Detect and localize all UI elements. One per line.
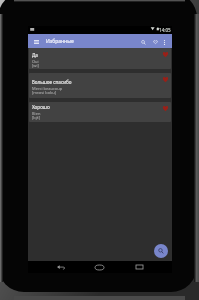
- button[interactable]: Recent apps: [127, 261, 151, 273]
- button[interactable]: Да: [29, 48, 171, 69]
- button[interactable]: Show favourites: [149, 36, 161, 48]
- button[interactable]: Remove from favourites: [160, 49, 170, 59]
- button[interactable]: Хорошо: [29, 102, 171, 122]
- button[interactable]: Search phrases: [154, 244, 168, 258]
- button[interactable]: Back: [49, 261, 73, 273]
- button[interactable]: More options: [158, 36, 170, 48]
- staticText: 14:05: [159, 27, 171, 33]
- staticText: Хорошо: [32, 104, 50, 110]
- staticText: Bien: [32, 111, 41, 116]
- staticText: Большое спасибо: [32, 79, 72, 85]
- staticText: Oui: [32, 59, 39, 64]
- button[interactable]: Open navigation menu: [30, 36, 42, 48]
- staticText: Да: [32, 52, 38, 58]
- button[interactable]: Home: [87, 261, 111, 273]
- staticText: [mɛʁsi boku]: [32, 90, 57, 95]
- staticText: [bjɛ̃]: [32, 115, 41, 120]
- button[interactable]: Remove from favourites: [160, 103, 170, 113]
- button[interactable]: Remove from favourites: [160, 74, 170, 84]
- staticText: Избранные: [46, 38, 74, 45]
- button[interactable]: Большое спасибо: [29, 73, 171, 98]
- staticText: Merci beaucoup: [32, 86, 63, 91]
- button[interactable]: Search: [137, 36, 149, 48]
- staticText: [wi]: [32, 63, 39, 68]
